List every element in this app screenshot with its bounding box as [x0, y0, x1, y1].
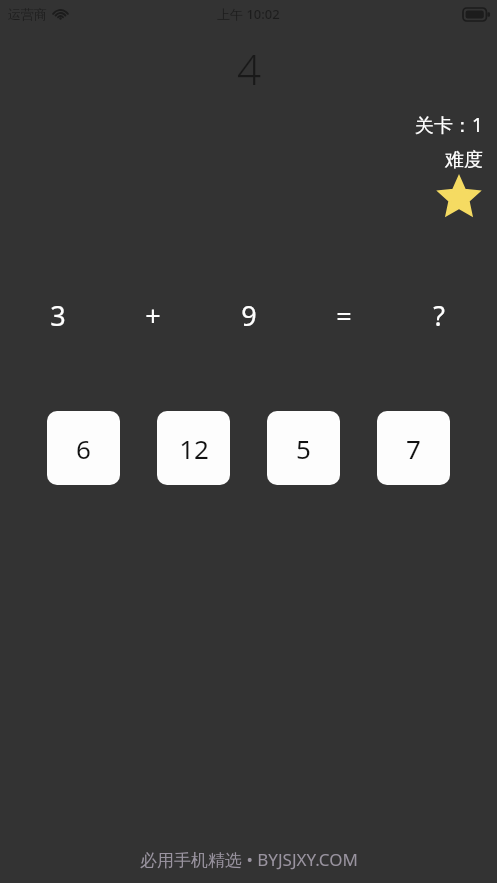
button[interactable]: 12 — [157, 411, 230, 485]
staticText: 难度 — [445, 148, 483, 172]
staticText: 7 — [406, 431, 421, 466]
staticText: 上午 10:02 — [217, 5, 280, 23]
other: Difficulty star — [439, 178, 479, 218]
staticText: 5 — [296, 431, 311, 466]
staticText: 4 — [237, 40, 261, 97]
button[interactable]: 7 — [377, 411, 450, 485]
staticText: 12 — [179, 431, 209, 466]
staticText: + — [145, 297, 161, 334]
button[interactable]: 5 — [267, 411, 340, 485]
staticText: 关卡：1 — [415, 112, 483, 138]
staticText: 必用手机精选 • BYJSJXY.COM — [140, 848, 358, 871]
staticText: 3 — [50, 297, 66, 334]
staticText: 运营商 — [8, 6, 47, 22]
staticText: 9 — [241, 297, 257, 334]
staticText: ? — [433, 297, 445, 334]
staticText: = — [336, 297, 352, 334]
button[interactable]: 6 — [47, 411, 120, 485]
staticText: 6 — [76, 431, 91, 466]
